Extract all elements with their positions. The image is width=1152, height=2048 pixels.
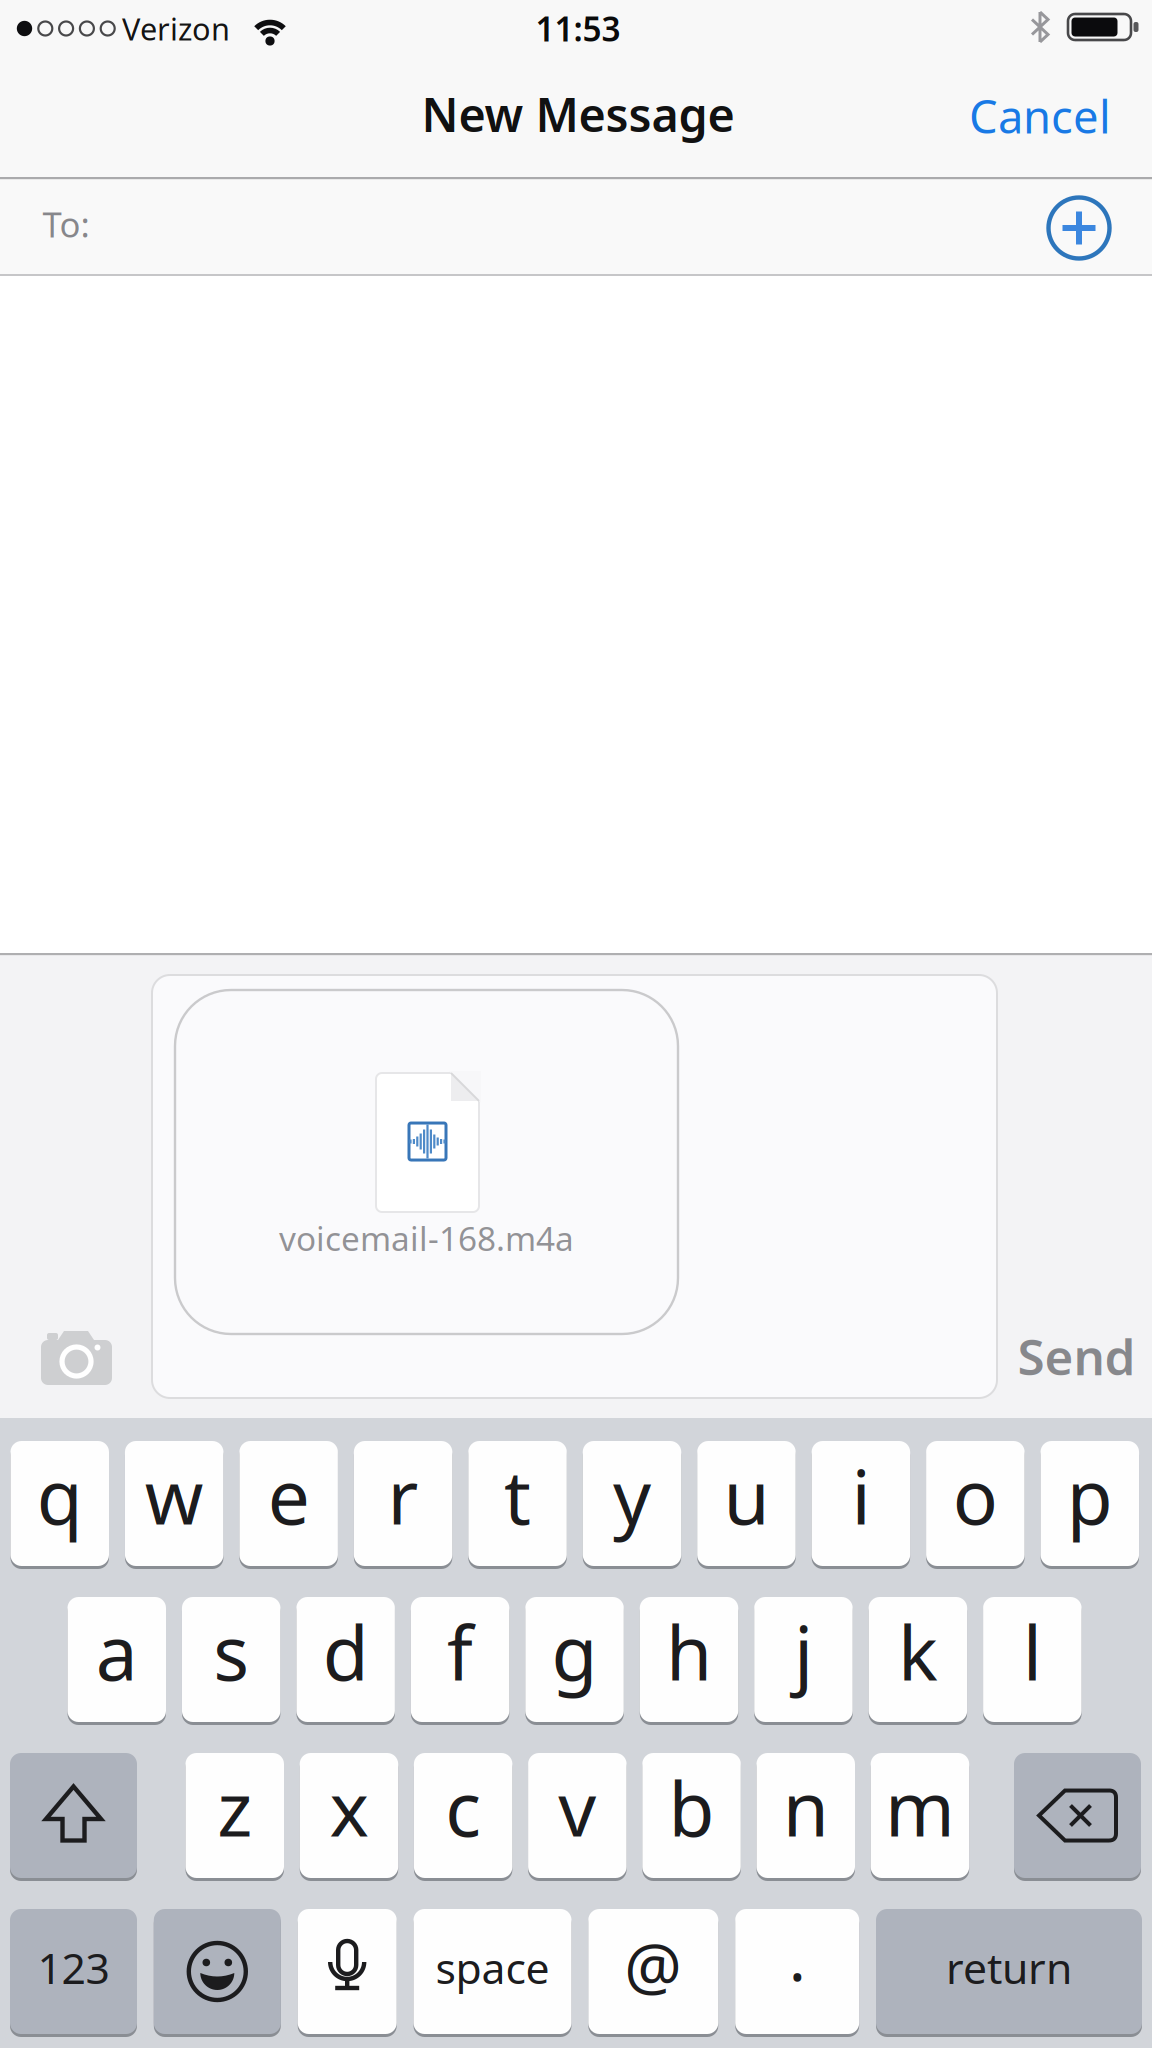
button[interactable]: b [642, 1753, 741, 1878]
staticText: Send [1017, 1323, 1135, 1389]
button[interactable]: x [300, 1753, 398, 1878]
button[interactable]: Cancel [955, 81, 1125, 151]
button[interactable]: h [640, 1597, 738, 1722]
button[interactable] [298, 1909, 397, 2034]
staticText: c [445, 1758, 481, 1857]
button[interactable]: d [296, 1597, 395, 1722]
button[interactable] [154, 1909, 281, 2034]
staticText: k [898, 1602, 938, 1701]
staticText: r [388, 1446, 419, 1545]
button[interactable]: i [812, 1441, 910, 1566]
button[interactable]: u [697, 1441, 796, 1566]
staticText: y [613, 1446, 651, 1545]
staticText: Verizon [122, 8, 230, 49]
button[interactable]: . [735, 1909, 859, 2034]
staticText: q [37, 1446, 83, 1545]
button[interactable] [1041, 190, 1117, 266]
button[interactable]: r [354, 1441, 452, 1566]
staticText: i [851, 1446, 870, 1545]
staticText: @ [624, 1923, 682, 2008]
staticText: voicemail-168.m4a [279, 1216, 574, 1260]
staticText: e [268, 1446, 310, 1545]
button[interactable]: a [67, 1597, 166, 1722]
staticText: n [783, 1758, 829, 1857]
staticText: l [1023, 1602, 1042, 1701]
button[interactable]: 123 [10, 1909, 137, 2034]
staticText: f [447, 1602, 473, 1701]
button[interactable]: z [185, 1753, 284, 1878]
staticText: o [953, 1446, 998, 1545]
staticText: space [435, 1939, 549, 1996]
staticText: Cancel [969, 86, 1111, 146]
button[interactable]: n [756, 1753, 855, 1878]
button[interactable]: e [239, 1441, 338, 1566]
button[interactable] [1014, 1753, 1141, 1878]
staticText: p [1067, 1446, 1113, 1545]
staticText: b [668, 1758, 714, 1857]
button[interactable]: w [125, 1441, 223, 1566]
staticText: h [666, 1602, 712, 1701]
button[interactable] [10, 1753, 137, 1878]
button[interactable]: return [876, 1909, 1142, 2034]
button[interactable]: Send [1001, 1316, 1151, 1396]
staticText: u [723, 1446, 769, 1545]
button[interactable]: y [583, 1441, 681, 1566]
button[interactable]: j [754, 1597, 853, 1722]
staticText: 11:53 [535, 6, 620, 51]
button[interactable]: space [413, 1909, 571, 2034]
staticText: New Message [421, 83, 734, 145]
button[interactable] [28, 1322, 124, 1394]
staticText: s [213, 1602, 249, 1701]
button[interactable]: m [871, 1753, 969, 1878]
button[interactable]: l [983, 1597, 1082, 1722]
button[interactable]: f [411, 1597, 509, 1722]
staticText: return [946, 1939, 1072, 1996]
button[interactable]: c [414, 1753, 512, 1878]
button[interactable]: v [528, 1753, 627, 1878]
staticText: d [323, 1602, 369, 1701]
button[interactable]: t [468, 1441, 567, 1566]
staticText: . [789, 1914, 806, 1999]
button[interactable]: p [1040, 1441, 1139, 1566]
button[interactable]: @ [588, 1909, 718, 2034]
staticText: a [96, 1602, 138, 1701]
staticText: g [551, 1602, 597, 1701]
staticText: m [885, 1758, 955, 1857]
staticText: x [329, 1758, 368, 1857]
button[interactable]: g [525, 1597, 624, 1722]
staticText: w [145, 1446, 204, 1545]
staticText: j [794, 1602, 813, 1701]
button[interactable]: o [926, 1441, 1025, 1566]
button[interactable]: k [869, 1597, 967, 1722]
staticText: t [504, 1446, 531, 1545]
staticText: z [217, 1758, 252, 1857]
staticText: v [558, 1758, 596, 1857]
staticText: To: [42, 201, 89, 247]
button[interactable]: q [10, 1441, 109, 1566]
staticText: 123 [37, 1939, 109, 1996]
button[interactable]: s [182, 1597, 280, 1722]
